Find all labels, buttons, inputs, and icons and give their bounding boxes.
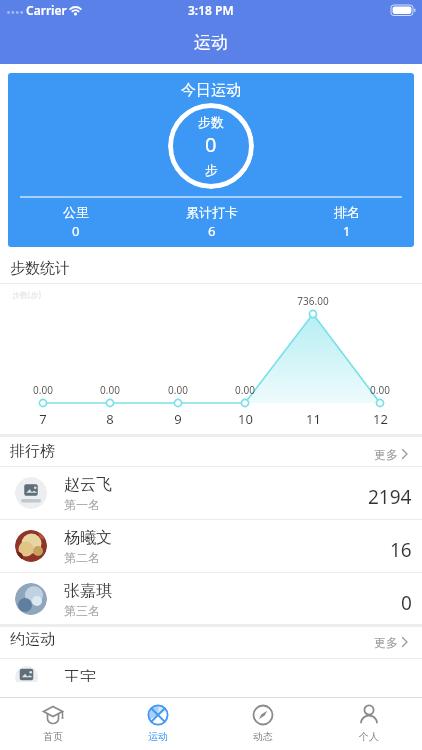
button[interactable]: 累计打卡 <box>144 201 279 247</box>
staticText: 2194 <box>368 484 412 510</box>
staticText: 第一名 <box>64 497 100 512</box>
staticText: 更多 <box>374 635 398 650</box>
staticText: 第三名 <box>64 603 100 618</box>
button[interactable]: 运动 <box>105 698 210 750</box>
button[interactable]: 排名 <box>279 201 414 247</box>
staticText: 累计打卡 <box>186 204 238 220</box>
staticText: 运动 <box>148 730 168 743</box>
staticText: 3:18 PM <box>188 2 234 18</box>
staticText: 8 <box>106 410 114 428</box>
staticText: 排行榜 <box>10 442 55 461</box>
staticText: 公里 <box>63 204 89 220</box>
staticText: 张嘉琪 <box>64 581 112 601</box>
staticText: 9 <box>174 410 182 428</box>
staticText: 步数(步) <box>12 289 41 300</box>
staticText: 运动 <box>194 32 228 53</box>
staticText: 6 <box>208 222 216 240</box>
button[interactable]: 今日运动 <box>8 73 414 247</box>
button[interactable]: 更多 <box>374 444 408 464</box>
staticText: 0.00 <box>235 383 255 397</box>
staticText: 0 <box>401 590 412 616</box>
staticText: 第二名 <box>64 550 100 565</box>
staticText: 10 <box>238 410 253 428</box>
staticText: Carrier <box>26 2 67 18</box>
staticText: 12 <box>373 410 388 428</box>
button[interactable]: 个人 <box>316 698 422 750</box>
staticText: 736.00 <box>297 294 329 308</box>
staticText: 今日运动 <box>181 81 241 100</box>
button[interactable]: 赵云飞 <box>0 467 422 519</box>
staticText: 0 <box>72 222 80 240</box>
staticText: 11 <box>306 410 321 428</box>
staticText: 步数 <box>198 114 224 130</box>
staticText: 0.00 <box>168 383 188 397</box>
staticText: 0.00 <box>33 383 53 397</box>
staticText: 步数统计 <box>10 259 70 278</box>
staticText: 0.00 <box>100 383 120 397</box>
staticText: 步 <box>205 162 218 178</box>
button[interactable]: 更多 <box>374 632 408 652</box>
staticText: 0.00 <box>370 383 390 397</box>
button[interactable]: 首页 <box>0 698 105 750</box>
staticText: 王宇 <box>64 668 96 682</box>
staticText: 7 <box>39 410 47 428</box>
staticText: 杨曦文 <box>64 528 112 548</box>
staticText: 16 <box>390 537 412 563</box>
staticText: 首页 <box>43 730 63 743</box>
staticText: 个人 <box>359 730 379 743</box>
staticText: 排名 <box>334 204 360 220</box>
staticText: 更多 <box>374 447 398 462</box>
button[interactable]: 张嘉琪 <box>0 573 422 625</box>
button[interactable]: 动态 <box>210 698 316 750</box>
staticText: 赵云飞 <box>64 475 112 495</box>
staticText: 约运动 <box>10 630 55 649</box>
staticText: 1 <box>343 222 351 240</box>
staticText: 0 <box>205 131 217 158</box>
button[interactable]: 杨曦文 <box>0 520 422 572</box>
button[interactable]: 公里 <box>8 201 144 247</box>
staticText: 动态 <box>253 730 273 743</box>
